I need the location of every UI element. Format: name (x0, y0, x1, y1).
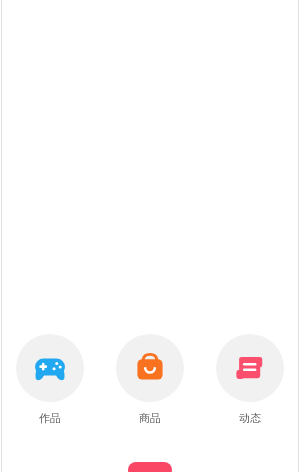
staticText: 动态 (239, 411, 261, 425)
button[interactable]: 发布 (128, 462, 172, 472)
staticText: 作品 (39, 411, 61, 425)
staticText: 商品 (139, 411, 161, 425)
button[interactable]: 作品 (0, 334, 100, 425)
button[interactable]: 动态 (200, 334, 300, 425)
button[interactable]: 商品 (100, 334, 200, 425)
